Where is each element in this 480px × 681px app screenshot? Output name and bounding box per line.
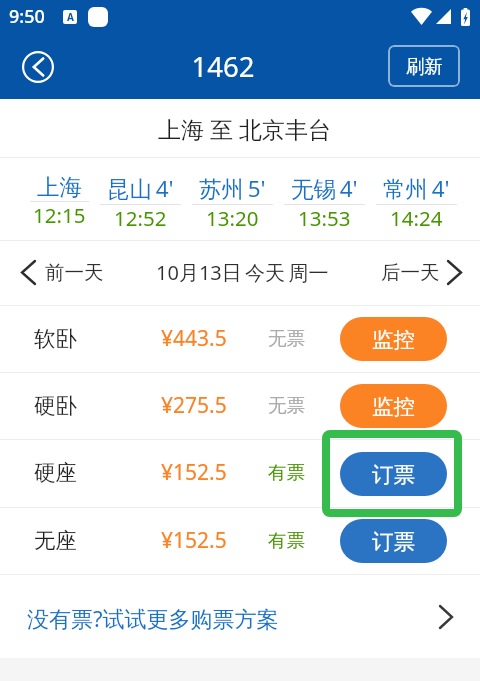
staticText: 订票 <box>372 461 415 488</box>
button[interactable]: 前一天 <box>22 260 104 285</box>
staticText: 苏州 5' <box>199 173 266 204</box>
staticText: 有票 <box>268 461 305 484</box>
staticText: 没有票?试试更多购票方案 <box>27 603 279 633</box>
button[interactable]: Back <box>13 42 62 91</box>
staticText: 9:50 <box>9 4 45 29</box>
staticText: 14:24 <box>390 204 443 232</box>
staticText: 订票 <box>372 528 415 555</box>
staticText: 上海 <box>37 173 82 201</box>
button[interactable]: 苏州 5' <box>192 158 273 240</box>
staticText: 12:52 <box>114 204 167 232</box>
staticText: 无票 <box>268 327 305 350</box>
staticText: 无锡 4' <box>291 173 358 204</box>
button[interactable]: 昆山 4' <box>100 158 181 240</box>
staticText: ¥152.5 <box>161 458 227 487</box>
button[interactable]: 订票 <box>340 519 447 563</box>
button[interactable]: 订票 <box>340 452 447 496</box>
staticText: 上海 至 北京丰台 <box>158 113 331 144</box>
staticText: 10月13日 今天 周一 <box>156 259 329 286</box>
staticText: 监控 <box>372 393 415 420</box>
staticText: 有票 <box>268 529 305 552</box>
staticText: 前一天 <box>45 260 104 285</box>
button[interactable]: 监控 <box>340 317 447 361</box>
staticText: 1462 <box>60 48 386 85</box>
staticText: 12:15 <box>33 201 86 229</box>
staticText: 13:20 <box>206 204 259 232</box>
staticText: 常州 4' <box>383 173 450 204</box>
staticText: 昆山 4' <box>107 173 174 204</box>
staticText: 刷新 <box>406 55 443 78</box>
button[interactable]: 后一天 <box>381 260 461 285</box>
staticText: 硬座 <box>34 459 77 486</box>
button[interactable]: 刷新 <box>388 45 460 87</box>
staticText: 后一天 <box>381 260 440 285</box>
staticText: 无座 <box>34 527 77 554</box>
button[interactable]: 监控 <box>340 384 447 428</box>
staticText: A <box>67 10 74 24</box>
staticText: 无票 <box>268 394 305 417</box>
button[interactable]: 上海 <box>30 158 89 240</box>
button[interactable]: 没有票?试试更多购票方案 <box>0 575 480 658</box>
staticText: 监控 <box>372 326 415 353</box>
staticText: 硬卧 <box>34 392 77 419</box>
staticText: ¥443.5 <box>161 324 227 353</box>
staticText: 13:53 <box>298 204 351 232</box>
staticText: ¥275.5 <box>161 391 227 420</box>
staticText: ¥152.5 <box>161 526 227 555</box>
button[interactable]: 无锡 4' <box>284 158 365 240</box>
button[interactable]: 常州 4' <box>376 158 457 240</box>
staticText: 软卧 <box>34 325 77 352</box>
